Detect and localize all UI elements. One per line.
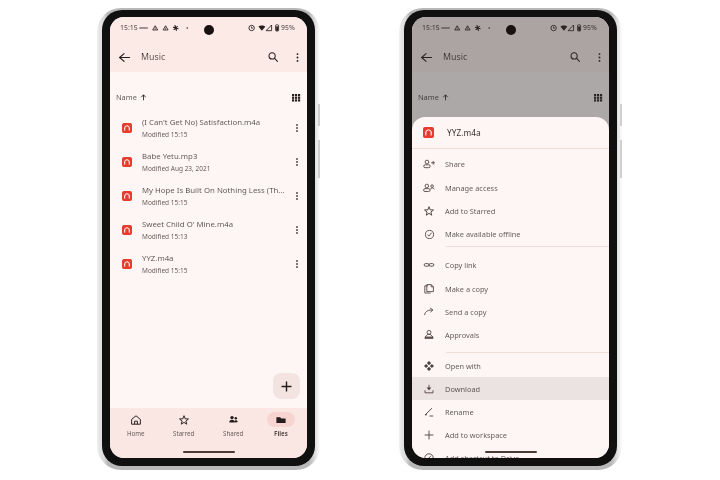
button[interactable]: Add to Starred bbox=[412, 199, 609, 222]
staticText: Sweet Child O' Mine.m4a bbox=[142, 219, 234, 230]
staticText: My Hope Is Built On Nothing Less (The So… bbox=[142, 185, 286, 196]
button[interactable]: More options bbox=[290, 121, 304, 135]
button[interactable]: More options bbox=[290, 189, 304, 203]
staticText: Approvals bbox=[445, 330, 480, 340]
staticText: Add to Starred bbox=[445, 206, 496, 216]
button[interactable]: More options bbox=[290, 155, 304, 169]
staticText: YYZ.m4a bbox=[142, 253, 174, 264]
button[interactable]: Create new bbox=[273, 373, 300, 399]
button[interactable]: More options bbox=[290, 223, 304, 237]
staticText: Share bbox=[445, 159, 465, 169]
staticText: Shared bbox=[223, 429, 244, 437]
button[interactable]: Manage access bbox=[412, 176, 609, 199]
staticText: 15:15 bbox=[120, 23, 138, 32]
button[interactable]: Navigate up bbox=[114, 47, 134, 67]
staticText: Modified 15:15 bbox=[142, 198, 188, 207]
staticText: Make available offline bbox=[445, 229, 521, 239]
button[interactable]: Open with bbox=[412, 354, 609, 377]
button[interactable]: Name bbox=[116, 89, 147, 105]
button[interactable]: Make available offline bbox=[412, 222, 609, 245]
button[interactable]: Switch to grid view bbox=[591, 90, 606, 105]
staticText: Music bbox=[443, 51, 468, 63]
button[interactable]: Add shortcut to Drive bbox=[412, 446, 609, 458]
staticText: Download bbox=[445, 384, 481, 394]
button[interactable]: Copy link bbox=[412, 253, 609, 276]
button[interactable]: Home bbox=[114, 412, 158, 437]
button[interactable]: Babe Yetu.mp3 bbox=[110, 145, 307, 179]
staticText: YYZ.m4a bbox=[447, 127, 481, 138]
button[interactable]: YYZ.m4a bbox=[110, 247, 307, 281]
button[interactable]: Files bbox=[259, 412, 303, 437]
staticText: Modified Aug 23, 2021 bbox=[142, 164, 211, 173]
button[interactable]: Shared bbox=[211, 412, 255, 437]
staticText: Home bbox=[127, 429, 145, 437]
staticText: 15:15 bbox=[422, 23, 440, 32]
staticText: Copy link bbox=[445, 260, 477, 270]
button[interactable]: Sweet Child O' Mine.m4a bbox=[110, 213, 307, 247]
staticText: Make a copy bbox=[445, 284, 489, 294]
button[interactable]: Name bbox=[418, 89, 449, 105]
staticText: Music bbox=[141, 51, 166, 63]
staticText: Modified 15:15 bbox=[142, 266, 188, 275]
staticText: Starred bbox=[173, 429, 195, 437]
button[interactable]: More options bbox=[288, 48, 306, 66]
button[interactable]: Starred bbox=[162, 412, 206, 437]
staticText: Files bbox=[274, 429, 288, 437]
staticText: Babe Yetu.mp3 bbox=[142, 151, 198, 162]
staticText: Modified 15:13 bbox=[142, 232, 188, 241]
button[interactable]: Make a copy bbox=[412, 277, 609, 300]
staticText: 95% bbox=[583, 23, 597, 32]
button[interactable]: More options bbox=[290, 257, 304, 271]
button[interactable]: Approvals bbox=[412, 323, 609, 346]
staticText: Modified 15:15 bbox=[142, 130, 188, 139]
staticText: Manage access bbox=[445, 183, 498, 193]
button[interactable]: Switch to grid view bbox=[289, 90, 304, 105]
button[interactable]: More options bbox=[590, 48, 608, 66]
button[interactable]: Search bbox=[263, 47, 283, 67]
button[interactable]: Download bbox=[412, 377, 609, 400]
staticText: Add shortcut to Drive bbox=[445, 453, 520, 458]
button[interactable]: Rename bbox=[412, 400, 609, 423]
staticText: Add to workspace bbox=[445, 430, 508, 440]
button[interactable]: Add to workspace bbox=[412, 423, 609, 446]
staticText: Rename bbox=[445, 407, 474, 417]
button[interactable]: Share bbox=[412, 152, 609, 175]
staticText: 95% bbox=[281, 23, 295, 32]
staticText: Name bbox=[116, 92, 137, 102]
button[interactable]: (I Can't Get No) Satisfaction.m4a bbox=[110, 111, 307, 145]
button[interactable]: Navigate up bbox=[416, 47, 436, 67]
staticText: Open with bbox=[445, 361, 481, 371]
button[interactable]: YYZ.m4a bbox=[412, 117, 609, 148]
button[interactable]: Search bbox=[565, 47, 585, 67]
staticText: Send a copy bbox=[445, 307, 487, 317]
button[interactable]: My Hope Is Built On Nothing Less (The So… bbox=[110, 179, 307, 213]
staticText: (I Can't Get No) Satisfaction.m4a bbox=[142, 117, 261, 128]
staticText: Name bbox=[418, 92, 439, 102]
button[interactable]: Send a copy bbox=[412, 300, 609, 323]
